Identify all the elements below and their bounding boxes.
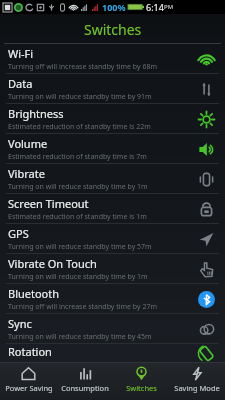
staticText: PM: [164, 3, 174, 11]
staticText: Estimated reduction of standby time is 1…: [8, 212, 147, 222]
staticText: Screen Timeout: [8, 196, 89, 211]
button[interactable]: GPS: [0, 224, 225, 253]
staticText: Vibrate: [8, 166, 45, 181]
button[interactable]: Wi-Fi: [0, 44, 225, 73]
staticText: 6:14: [146, 1, 164, 13]
other: Data toggle: [195, 78, 217, 100]
staticText: Saving Mode: [174, 383, 220, 393]
staticText: Data: [8, 76, 33, 91]
button[interactable]: Vibrate: [0, 164, 225, 193]
staticText: Bluetooth: [8, 286, 60, 301]
button[interactable]: Switches: [113, 362, 169, 400]
button[interactable]: Vibrate On Touch: [0, 254, 225, 283]
staticText: Turning on will reduce standby time by 5…: [8, 242, 152, 252]
other: Volume toggle: [195, 138, 217, 160]
staticText: Estimated reduction of standby time is 2…: [8, 122, 151, 132]
staticText: Power Saving: [5, 383, 53, 393]
button[interactable]: Power Saving: [0, 362, 57, 400]
staticText: Wi-Fi: [8, 46, 34, 61]
staticText: Brightness: [8, 106, 64, 121]
button[interactable]: Saving Mode: [169, 362, 225, 400]
staticText: Turning on will reduce standby time by 9…: [8, 92, 152, 102]
staticText: Estimated reduction of standby time is 7…: [8, 152, 147, 162]
other: Wi-Fi toggle: [195, 48, 217, 70]
button[interactable]: Bluetooth: [0, 284, 225, 313]
button[interactable]: Brightness: [0, 104, 225, 133]
staticText: Turning on will reduce standby time by 1…: [8, 182, 148, 192]
staticText: Vibrate On Touch: [8, 256, 97, 271]
other: GPS toggle: [195, 228, 217, 250]
staticText: Rotation: [8, 344, 52, 359]
other: Vibrate On Touch toggle: [195, 258, 217, 280]
staticText: Switches: [126, 383, 157, 393]
staticText: GPS: [8, 226, 29, 241]
button[interactable]: Data: [0, 74, 225, 103]
other: Bluetooth toggle: [195, 288, 217, 310]
staticText: Turning on will reduce standby time by 1…: [8, 272, 148, 282]
other: Screen Timeout toggle: [195, 198, 217, 220]
other: Brightness toggle: [195, 108, 217, 130]
staticText: Sync: [8, 316, 32, 331]
staticText: Turning off will increase standby time b…: [8, 302, 157, 312]
staticText: Switches: [84, 20, 142, 39]
other: Rotation toggle: [195, 344, 217, 362]
staticText: Volume: [8, 136, 48, 151]
staticText: Turning on will reduce standby time by 4…: [8, 332, 152, 342]
other: Sync toggle: [195, 318, 217, 340]
button[interactable]: Screen Timeout: [0, 194, 225, 223]
staticText: Consumption: [61, 383, 109, 393]
button[interactable]: Rotation: [0, 344, 225, 362]
button[interactable]: Sync: [0, 314, 225, 343]
staticText: Turning off will increase standby time b…: [8, 62, 157, 72]
button[interactable]: Consumption: [57, 362, 113, 400]
other: Vibrate toggle: [195, 168, 217, 190]
staticText: 100%: [102, 1, 126, 13]
button[interactable]: Volume: [0, 134, 225, 163]
